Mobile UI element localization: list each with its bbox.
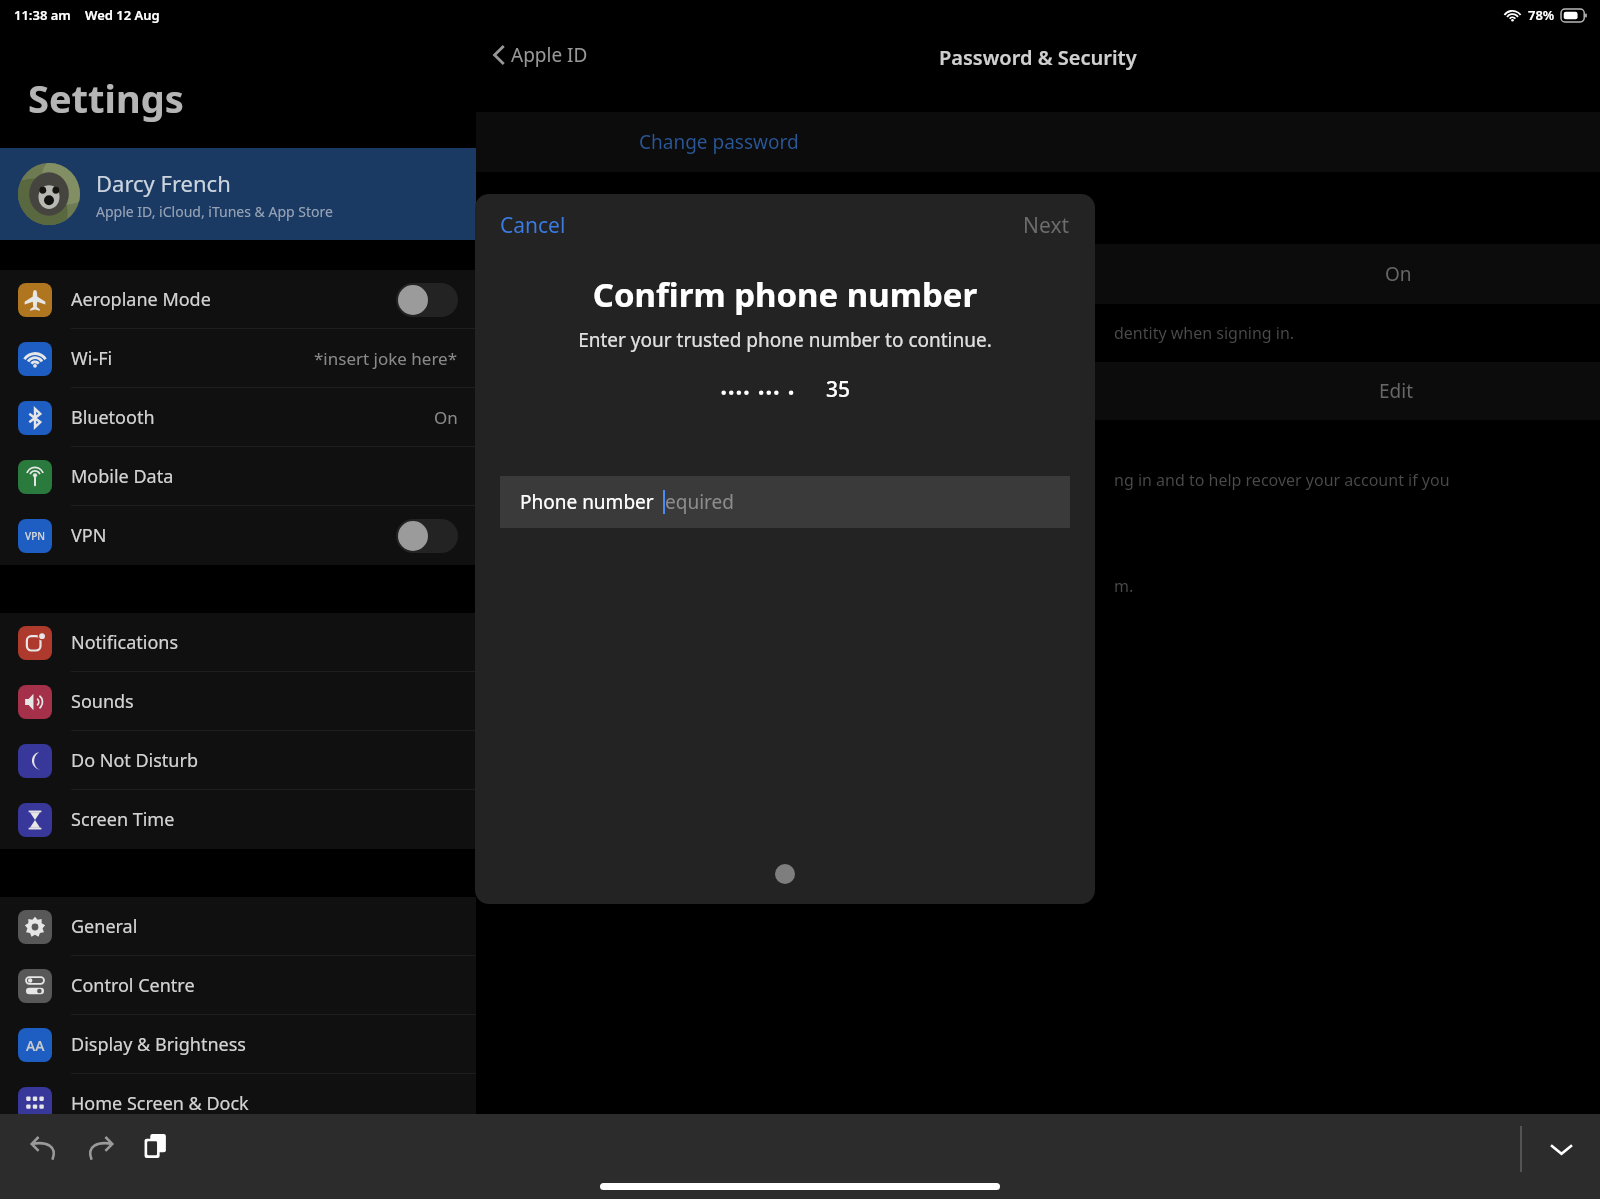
button[interactable]: Hide keyboard — [1538, 1126, 1584, 1172]
button[interactable]: Home Screen & Dock — [0, 1074, 476, 1133]
staticText: *insert joke here* — [314, 347, 458, 370]
staticText: 11:38 am — [14, 6, 71, 24]
staticText: On — [1385, 261, 1412, 287]
button[interactable]: VPN — [0, 506, 476, 565]
staticText: ng in and to help recover your account i… — [1114, 469, 1450, 491]
button[interactable]: Paste — [130, 1120, 182, 1172]
staticText: Settings — [28, 72, 184, 124]
button[interactable]: VPN toggle — [396, 519, 458, 553]
staticText: Darcy French — [96, 168, 231, 198]
staticText: Confirm phone number — [489, 272, 1081, 317]
staticText: Mobile Data — [71, 464, 174, 489]
staticText: Edit — [1379, 378, 1414, 404]
button[interactable]: Edit — [476, 362, 1600, 420]
staticText: General — [71, 914, 138, 939]
button[interactable]: AA — [0, 1015, 476, 1074]
button[interactable]: Screen Time — [0, 790, 476, 849]
staticText: Apple ID — [511, 42, 588, 68]
staticText: m. — [1114, 575, 1134, 597]
button[interactable]: Sounds — [0, 672, 476, 731]
staticText: Phone number — [520, 489, 654, 515]
button[interactable]: Notifications — [0, 613, 476, 672]
button[interactable]: Do Not Disturb — [0, 731, 476, 790]
staticText: Cancel — [500, 211, 566, 240]
staticText: 35 — [826, 375, 851, 404]
staticText: Screen Time — [71, 807, 175, 832]
staticText: Next — [1023, 211, 1070, 240]
button[interactable]: Change password — [476, 112, 1600, 172]
button[interactable]: Darcy French — [0, 148, 476, 240]
staticText: Aeroplane Mode — [71, 287, 211, 312]
staticText: Wed 12 Aug — [85, 6, 160, 24]
button[interactable]: Wi-Fi — [0, 329, 476, 388]
staticText: Notifications — [71, 630, 179, 655]
staticText: Apple ID, iCloud, iTunes & App Store — [96, 202, 333, 221]
button[interactable]: Aeroplane Mode — [0, 270, 476, 329]
staticText: Control Centre — [71, 973, 195, 998]
button[interactable]: Bluetooth — [0, 388, 476, 447]
button[interactable]: On — [476, 244, 1600, 304]
staticText: 78% — [1528, 6, 1555, 24]
button[interactable]: Resize sheet — [775, 864, 795, 884]
staticText: Change password — [639, 129, 799, 155]
staticText: dentity when signing in. — [1114, 322, 1295, 344]
staticText: VPN — [25, 529, 46, 543]
button[interactable]: Redo — [74, 1120, 126, 1172]
button[interactable]: Next — [1011, 203, 1095, 248]
staticText: Bluetooth — [71, 405, 155, 430]
staticText: Home Screen & Dock — [71, 1091, 249, 1116]
staticText: Wi-Fi — [71, 346, 113, 371]
button[interactable]: General — [0, 897, 476, 956]
button[interactable]: Cancel — [475, 203, 578, 248]
staticText: Enter your trusted phone number to conti… — [489, 327, 1081, 353]
staticText: equired — [665, 489, 734, 515]
button[interactable]: Mobile Data — [0, 447, 476, 506]
staticText: AA — [26, 1036, 45, 1055]
staticText: Display & Brightness — [71, 1032, 246, 1057]
staticText: Do Not Disturb — [71, 748, 198, 773]
button[interactable]: Phone number — [500, 476, 1070, 528]
button[interactable]: Aeroplane Mode toggle — [396, 283, 458, 317]
button[interactable]: Undo — [18, 1120, 70, 1172]
staticText: Password & Security — [939, 44, 1137, 71]
button[interactable]: Apple ID — [492, 42, 588, 68]
button[interactable]: Control Centre — [0, 956, 476, 1015]
staticText: VPN — [71, 523, 107, 548]
staticText: Sounds — [71, 689, 134, 714]
staticText: On — [434, 406, 458, 429]
